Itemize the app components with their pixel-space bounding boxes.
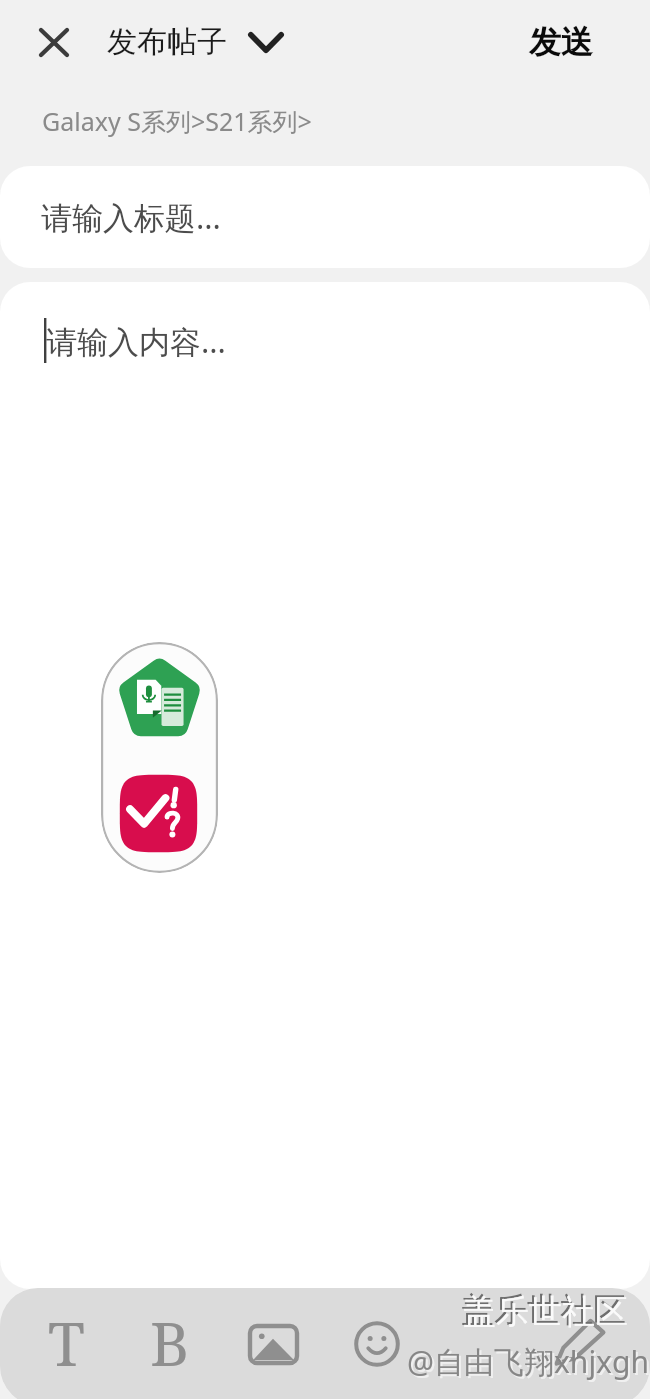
button[interactable]: Bold [134, 1302, 206, 1374]
staticText: Galaxy S系列>S21系列> [42, 104, 312, 138]
button[interactable]: Text style [30, 1302, 102, 1374]
button[interactable]: Emoji [341, 1308, 413, 1380]
staticText: 盖乐世社区 [461, 1289, 626, 1331]
button[interactable]: Close [20, 8, 88, 76]
staticText: @自由飞翔xhjxgh [409, 1343, 650, 1384]
button[interactable]: Draw [544, 1306, 616, 1378]
button[interactable]: 请输入内容... [0, 282, 650, 1289]
staticText: @自由飞翔xhjxgh [407, 1341, 649, 1382]
staticText: 盖乐世社区 [463, 1291, 628, 1333]
staticText: 请输入标题... [41, 196, 221, 238]
staticText: B [150, 1302, 190, 1374]
button[interactable]: Assistant tools [101, 642, 218, 873]
staticText: 发布帖子 [107, 23, 227, 61]
button[interactable]: 请输入标题... [0, 166, 650, 268]
button[interactable]: 发布帖子 [103, 8, 288, 76]
button[interactable]: 发送 [505, 8, 617, 76]
button[interactable]: Insert image [237, 1308, 309, 1380]
staticText: 请输入内容... [46, 320, 226, 362]
staticText: T [48, 1302, 85, 1374]
staticText: 发送 [529, 22, 593, 62]
